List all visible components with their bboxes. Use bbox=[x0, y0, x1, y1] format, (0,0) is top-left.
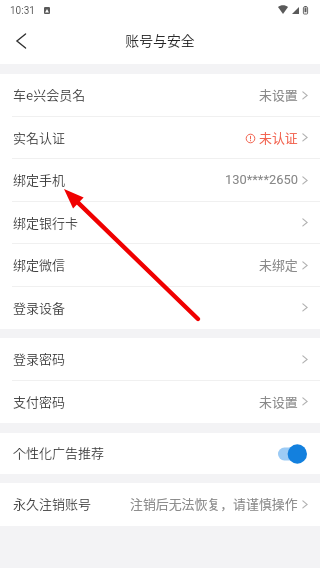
button[interactable]: 登录设备 bbox=[0, 287, 320, 329]
staticText: 车e兴会员名 bbox=[13, 85, 86, 104]
button[interactable]: 绑定手机 bbox=[0, 159, 320, 202]
staticText: 登录密码 bbox=[13, 349, 66, 368]
button[interactable]: 个性化广告推荐 bbox=[0, 433, 320, 474]
staticText: 登录设备 bbox=[13, 298, 66, 317]
button[interactable]: 实名认证 bbox=[0, 117, 320, 159]
button[interactable]: 绑定银行卡 bbox=[0, 202, 320, 244]
button[interactable]: 车e兴会员名 bbox=[0, 74, 320, 117]
staticText: 未认证 bbox=[259, 128, 298, 147]
staticText: 永久注销账号 bbox=[13, 494, 92, 513]
staticText: 未绑定 bbox=[259, 255, 298, 274]
staticText: 账号与安全 bbox=[125, 30, 195, 50]
staticText: 绑定银行卡 bbox=[13, 213, 79, 232]
staticText: 绑定微信 bbox=[13, 255, 66, 274]
button[interactable]: 支付密码 bbox=[0, 381, 320, 423]
button[interactable]: Back bbox=[0, 20, 42, 62]
staticText: 实名认证 bbox=[13, 128, 66, 147]
staticText: 绑定手机 bbox=[13, 170, 66, 189]
staticText: 支付密码 bbox=[13, 392, 66, 411]
staticText: 个性化广告推荐 bbox=[13, 443, 105, 462]
button[interactable]: 登录密码 bbox=[0, 338, 320, 381]
button[interactable]: 绑定微信 bbox=[0, 244, 320, 287]
staticText: 未设置 bbox=[259, 85, 298, 104]
staticText: 130****2650 bbox=[225, 172, 298, 187]
button[interactable]: 永久注销账号 bbox=[0, 483, 320, 526]
staticText: 注销后无法恢复，请谨慎操作 bbox=[130, 494, 298, 513]
staticText: 10:31 bbox=[10, 5, 35, 17]
staticText: 未设置 bbox=[259, 392, 298, 411]
